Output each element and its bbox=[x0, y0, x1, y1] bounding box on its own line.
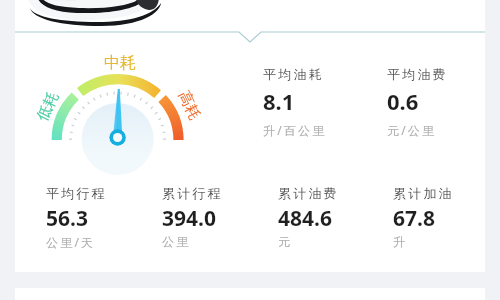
staticText: 平均油耗 bbox=[263, 66, 324, 82]
staticText: 累计油费 bbox=[278, 185, 339, 201]
staticText: 8.1 bbox=[263, 86, 295, 116]
staticText: 累计加油 bbox=[393, 185, 454, 201]
staticText: 公里/天 bbox=[46, 234, 96, 250]
staticText: 67.8 bbox=[393, 204, 435, 233]
staticText: 元/公里 bbox=[387, 122, 437, 138]
button[interactable]: 累计油费 bbox=[278, 185, 356, 252]
staticText: 元 bbox=[278, 234, 293, 249]
button[interactable]: 累计加油 bbox=[393, 185, 471, 252]
staticText: 高耗 bbox=[174, 88, 204, 123]
staticText: 484.6 bbox=[278, 204, 332, 233]
staticText: 低耗 bbox=[33, 89, 63, 124]
button[interactable]: 累计行程 bbox=[162, 185, 240, 252]
button[interactable]: 平均油耗 bbox=[263, 66, 341, 140]
staticText: 0.6 bbox=[387, 86, 419, 116]
staticText: 394.0 bbox=[162, 204, 216, 233]
staticText: 平均行程 bbox=[46, 185, 107, 201]
staticText: 56.3 bbox=[46, 204, 88, 233]
button[interactable]: 平均油费 bbox=[387, 66, 465, 140]
staticText: 公里 bbox=[162, 234, 191, 249]
staticText: 升 bbox=[393, 234, 408, 249]
staticText: 平均油费 bbox=[387, 66, 448, 82]
staticText: 累计行程 bbox=[162, 185, 223, 201]
staticText: 升/百公里 bbox=[263, 122, 327, 138]
button[interactable]: 平均行程 bbox=[46, 185, 124, 252]
staticText: 中耗 bbox=[104, 53, 136, 73]
